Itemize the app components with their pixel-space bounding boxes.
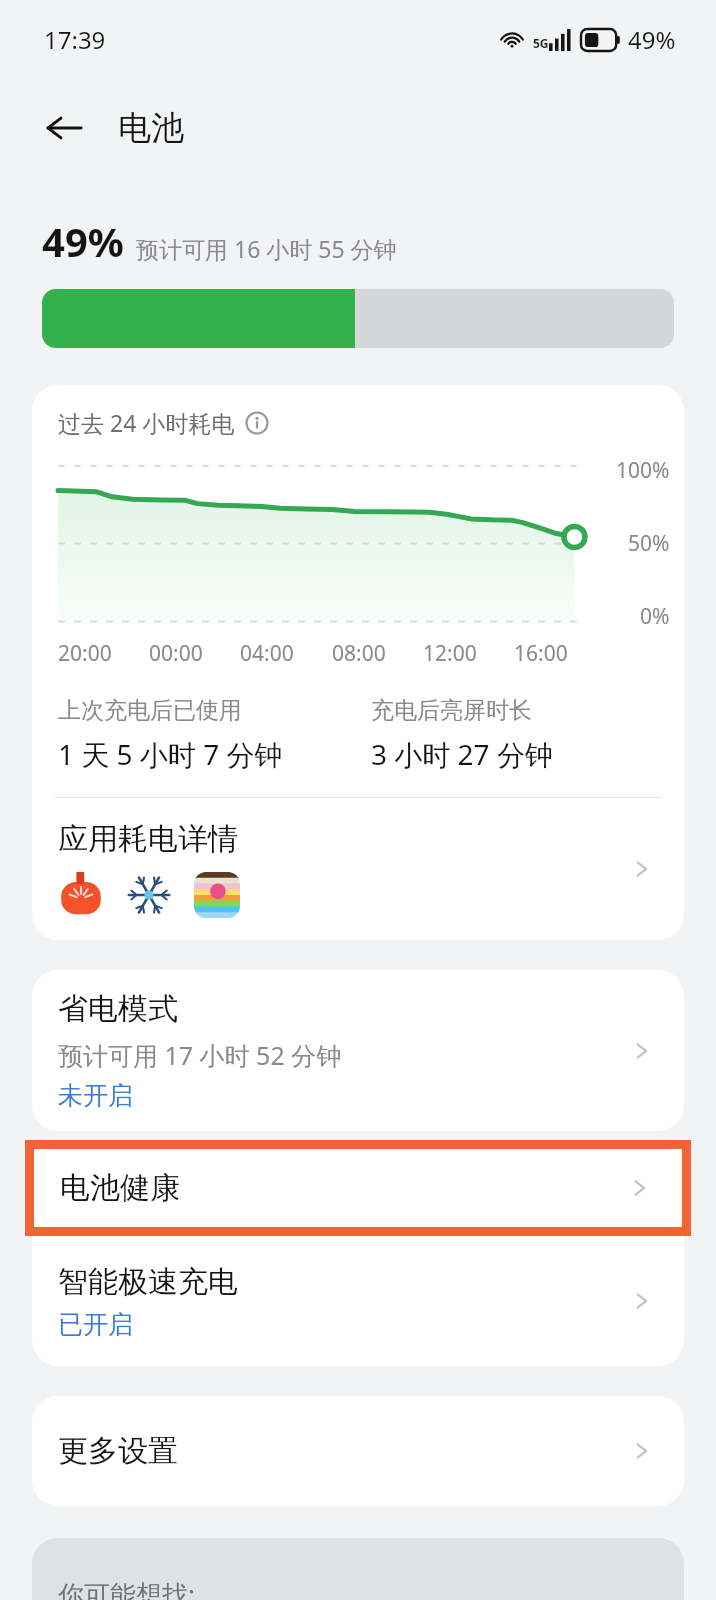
staticText: 50% — [628, 529, 670, 558]
staticText: 16:00 — [514, 639, 568, 668]
staticText: 17:39 — [44, 23, 106, 56]
button[interactable]: 应用耗电详情 — [32, 798, 684, 940]
staticText: 你可能想找: — [58, 1576, 195, 1600]
staticText: 上次充电后已使用 — [58, 696, 242, 725]
staticText: 预计可用 16 小时 55 分钟 — [136, 233, 397, 264]
staticText: 08:00 — [332, 639, 386, 668]
staticText: 12:00 — [423, 639, 477, 668]
staticText: 电池健康 — [60, 1169, 180, 1207]
staticText: 04:00 — [240, 639, 294, 668]
staticText: 1 天 5 小时 7 分钟 — [58, 735, 283, 773]
staticText: 5G — [533, 35, 549, 51]
staticText: 49% — [628, 23, 676, 56]
button[interactable]: Info — [245, 411, 269, 435]
staticText: 省电模式 — [58, 990, 178, 1028]
staticText: 充电后亮屏时长 — [371, 696, 532, 725]
staticText: 00:00 — [149, 639, 203, 668]
staticText: 0% — [640, 602, 670, 631]
staticText: 已开启 — [58, 1309, 133, 1340]
staticText: 未开启 — [58, 1080, 133, 1111]
staticText: 电池 — [118, 107, 184, 149]
button[interactable]: 智能极速充电 — [32, 1236, 684, 1366]
staticText: 应用耗电详情 — [58, 820, 238, 858]
staticText: 20:00 — [58, 639, 112, 668]
staticText: 3 小时 27 分钟 — [371, 735, 553, 773]
staticText: 过去 24 小时耗电 — [58, 407, 235, 438]
staticText: 100% — [616, 456, 670, 485]
button[interactable]: 更多设置 — [32, 1396, 684, 1506]
staticText: 智能极速充电 — [58, 1263, 238, 1301]
staticText: 更多设置 — [58, 1432, 178, 1470]
button[interactable]: 省电模式 — [32, 970, 684, 1131]
staticText: 预计可用 17 小时 52 分钟 — [58, 1038, 342, 1072]
button[interactable]: Back — [36, 100, 92, 156]
staticText: 49% — [42, 214, 124, 268]
button[interactable]: 电池健康 — [34, 1149, 682, 1227]
